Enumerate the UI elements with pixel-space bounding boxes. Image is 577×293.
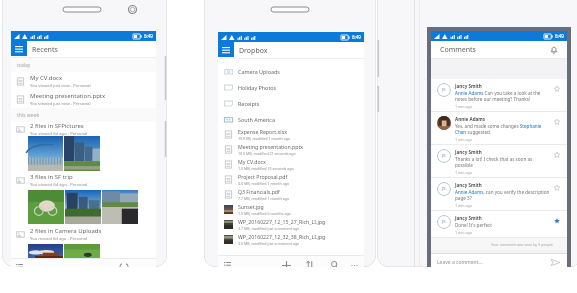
staticText: Q3 Financials.pdf [238, 188, 280, 195]
staticText: 1 min ago [455, 104, 472, 109]
button[interactable]: South America [218, 111, 364, 127]
button[interactable]: My CV.docx [11, 72, 156, 90]
button[interactable]: My CV.docx [218, 157, 364, 172]
button[interactable]: Star comment [551, 182, 562, 193]
staticText: 1 min ago [455, 137, 472, 142]
button[interactable]: Camera Uploads [218, 63, 364, 79]
staticText: 10.5 MB, modified 21 seconds ago [238, 151, 296, 156]
button[interactable]: Open navigation menu [11, 41, 27, 56]
button[interactable]: Refresh [117, 260, 131, 267]
staticText: Jancy Smith [455, 149, 482, 155]
staticText: South America [238, 116, 275, 123]
staticText: Annie Adams Can you take a look at the n… [455, 90, 551, 102]
staticText: Jancy Smith [455, 83, 482, 89]
button[interactable]: Send [549, 256, 562, 267]
button[interactable]: More options [347, 258, 361, 267]
button[interactable]: Add [279, 258, 293, 267]
staticText: 6:49 [555, 33, 564, 39]
staticText: Jancy Smith [455, 182, 482, 188]
staticText: today [17, 62, 31, 69]
button[interactable]: Sort [303, 258, 317, 267]
button[interactable]: Annie Adams [431, 112, 567, 145]
button[interactable]: JS [431, 178, 567, 211]
button[interactable]: Comments [431, 41, 567, 58]
staticText: 6:49 [352, 34, 361, 40]
staticText: You moved 6d ago - Personal [30, 236, 88, 242]
staticText: 1 min ago [455, 203, 472, 208]
button[interactable]: WP_20160227_12_32_38_Rich_LI.jpg [218, 232, 364, 247]
button[interactable]: JS [431, 79, 567, 112]
staticText: 3 files in SF trip [30, 173, 73, 181]
staticText: WP_20160227_12_32_38_Rich_LI.jpg [238, 233, 326, 240]
staticText: Annie Adams, can you verify the descript… [455, 189, 551, 201]
staticText: You viewed just now - Personal [30, 101, 91, 107]
staticText: 6:49 [144, 33, 153, 39]
staticText: 3.6 MB, modified just a moment ago [238, 241, 300, 246]
staticText: 2 files in Camera Uploads [30, 227, 102, 235]
button[interactable]: Star comment [551, 83, 562, 94]
staticText: Sunset.jpg [238, 203, 264, 210]
staticText: 1 min ago [455, 170, 472, 175]
button[interactable]: Star comment [551, 149, 562, 160]
staticText: 1.5 MB, modified 6 months ago [238, 211, 291, 216]
staticText: JS [442, 153, 446, 159]
button[interactable]: 2 files in SFPictures [11, 122, 156, 136]
button[interactable]: Notifications [546, 42, 562, 58]
staticText: JS [442, 186, 446, 192]
staticText: Dropbox [239, 46, 268, 56]
button[interactable]: Holiday Photos [218, 79, 364, 95]
staticText: You viewed 6d ago - Personal [30, 182, 88, 188]
staticText: My CV.docx [238, 158, 266, 165]
staticText: Leave a comment... [437, 259, 483, 266]
button[interactable]: Meeting presentation.pptx [218, 142, 364, 157]
button[interactable]: Project Proposal.pdf [218, 172, 364, 187]
staticText: Meeting presentation.pptx [238, 143, 304, 150]
staticText: Yes, and made some changes Stephanie Che… [455, 123, 551, 135]
button[interactable]: Leave a comment... [431, 254, 567, 267]
staticText: JS [442, 87, 446, 93]
button[interactable]: Star comment [551, 215, 562, 226]
staticText: 2 files in SFPictures [30, 122, 84, 130]
staticText: Recents [32, 45, 58, 55]
button[interactable]: Meeting presentation.pptx [11, 90, 156, 108]
staticText: Meeting presentation.pptx [30, 92, 106, 100]
button[interactable] [28, 136, 100, 171]
button[interactable]: 2 files in Camera Uploads [11, 224, 156, 244]
staticText: Annie Adams [455, 116, 486, 122]
staticText: WP_20160227_12_15_27_Rich_LI.jpg [238, 218, 326, 225]
button[interactable]: Receipts [218, 95, 364, 111]
staticText: 3.6 MB, modified 1 month ago [238, 181, 290, 186]
button[interactable] [28, 190, 138, 224]
button[interactable]: Open navigation menu [218, 42, 234, 57]
button[interactable]: Q3 Financials.pdf [218, 187, 364, 202]
staticText: 1 min ago [455, 230, 472, 235]
staticText: Expense Report.xlsx [238, 128, 287, 135]
staticText: 1.5 MB, modified 15 seconds ago [238, 166, 294, 171]
staticText: Comments [440, 45, 476, 55]
button[interactable]: List view [220, 258, 234, 267]
button[interactable]: Search [328, 258, 342, 267]
button[interactable]: 3 files in SF trip [11, 171, 156, 190]
button[interactable]: Star comment [551, 116, 562, 127]
staticText: 3.7 MB, modified just a moment ago [238, 226, 300, 231]
button[interactable]: List view [12, 260, 26, 267]
staticText: Receipts [238, 100, 260, 107]
staticText: Thanks a lot! I check that as soon as po… [455, 156, 551, 168]
staticText: Done! It's perfect [455, 222, 492, 228]
button[interactable] [28, 244, 100, 258]
button[interactable]: JS [431, 211, 567, 238]
button[interactable]: Sunset.jpg [218, 202, 364, 217]
staticText: My CV.docx [30, 74, 63, 82]
staticText: Your comment was seen by 3 people [491, 242, 553, 247]
staticText: this week [17, 112, 40, 119]
staticText: JS [442, 219, 446, 225]
button[interactable]: JS [431, 145, 567, 178]
staticText: Jancy Smith [455, 215, 482, 221]
button[interactable]: WP_20160227_12_15_27_Rich_LI.jpg [218, 217, 364, 232]
staticText: You viewed just now - Personal [30, 83, 91, 89]
button[interactable]: Expense Report.xlsx [218, 127, 364, 142]
staticText: 19.9 KB, modified 1 month ago [238, 136, 291, 141]
staticText: Camera Uploads [238, 68, 280, 75]
staticText: Project Proposal.pdf [238, 173, 288, 180]
